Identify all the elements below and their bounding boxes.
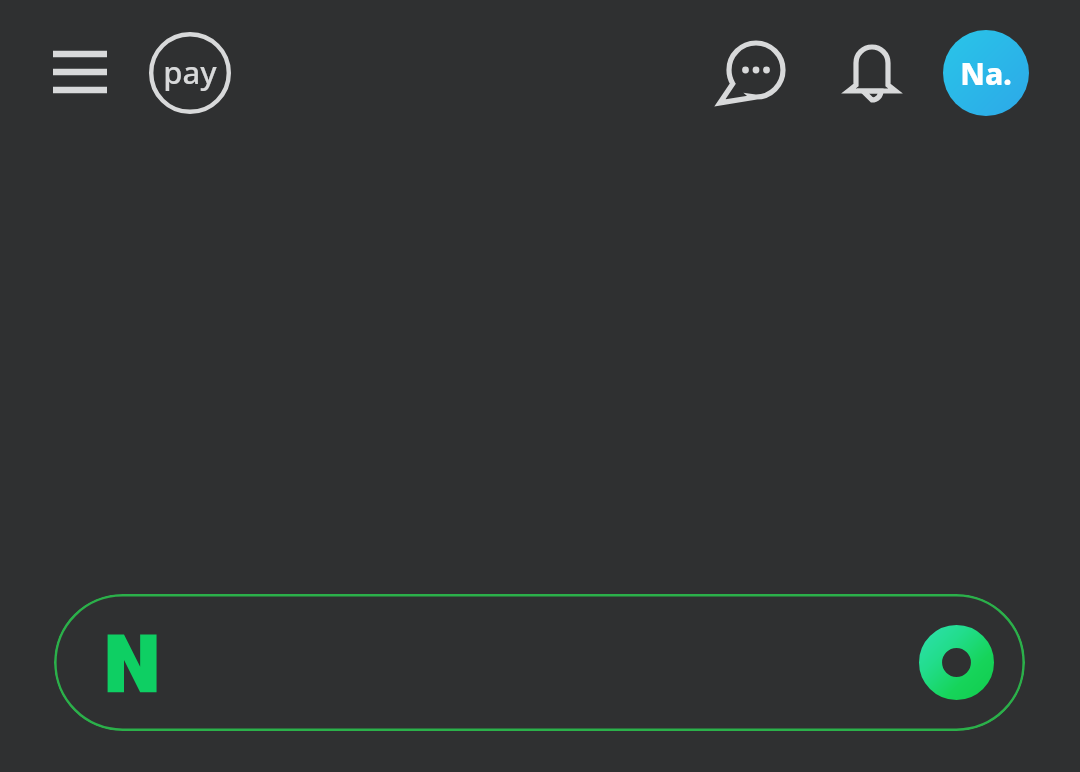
other: Naver home (95, 627, 167, 699)
button[interactable]: Notifications (836, 34, 908, 106)
staticText: Na. (960, 53, 1012, 94)
button[interactable]: Profile (943, 30, 1029, 116)
button[interactable]: Pay (149, 32, 231, 114)
other: Search (919, 625, 994, 700)
button[interactable]: Naver home (54, 594, 1025, 731)
staticText: pay (163, 51, 217, 93)
button[interactable]: Chat (718, 34, 794, 110)
button[interactable]: Menu (38, 38, 122, 108)
